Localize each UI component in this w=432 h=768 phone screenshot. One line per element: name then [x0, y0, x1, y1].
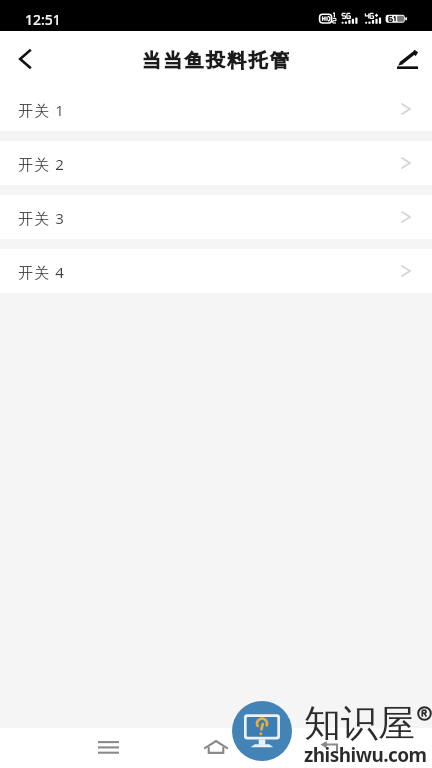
button[interactable]: Edit — [382, 34, 432, 84]
staticText: 开关 2 — [18, 154, 65, 174]
button[interactable]: Back — [306, 728, 354, 768]
staticText: 知识屋 — [304, 700, 415, 747]
button[interactable]: 开关 1 — [0, 87, 432, 131]
button[interactable]: 开关 2 — [0, 141, 432, 185]
button[interactable]: Recent apps — [84, 728, 132, 768]
staticText: 12:51 — [25, 10, 61, 29]
button[interactable]: Back — [0, 34, 50, 84]
staticText: 开关 1 — [18, 100, 65, 120]
staticText: 开关 3 — [18, 208, 65, 228]
staticText: 开关 4 — [18, 262, 65, 282]
staticText: zhishiwu.com — [304, 742, 427, 768]
staticText: 当当鱼投料托管 — [142, 49, 292, 73]
button[interactable]: 开关 4 — [0, 249, 432, 293]
button[interactable]: 开关 3 — [0, 195, 432, 239]
button[interactable]: Home — [192, 728, 240, 768]
